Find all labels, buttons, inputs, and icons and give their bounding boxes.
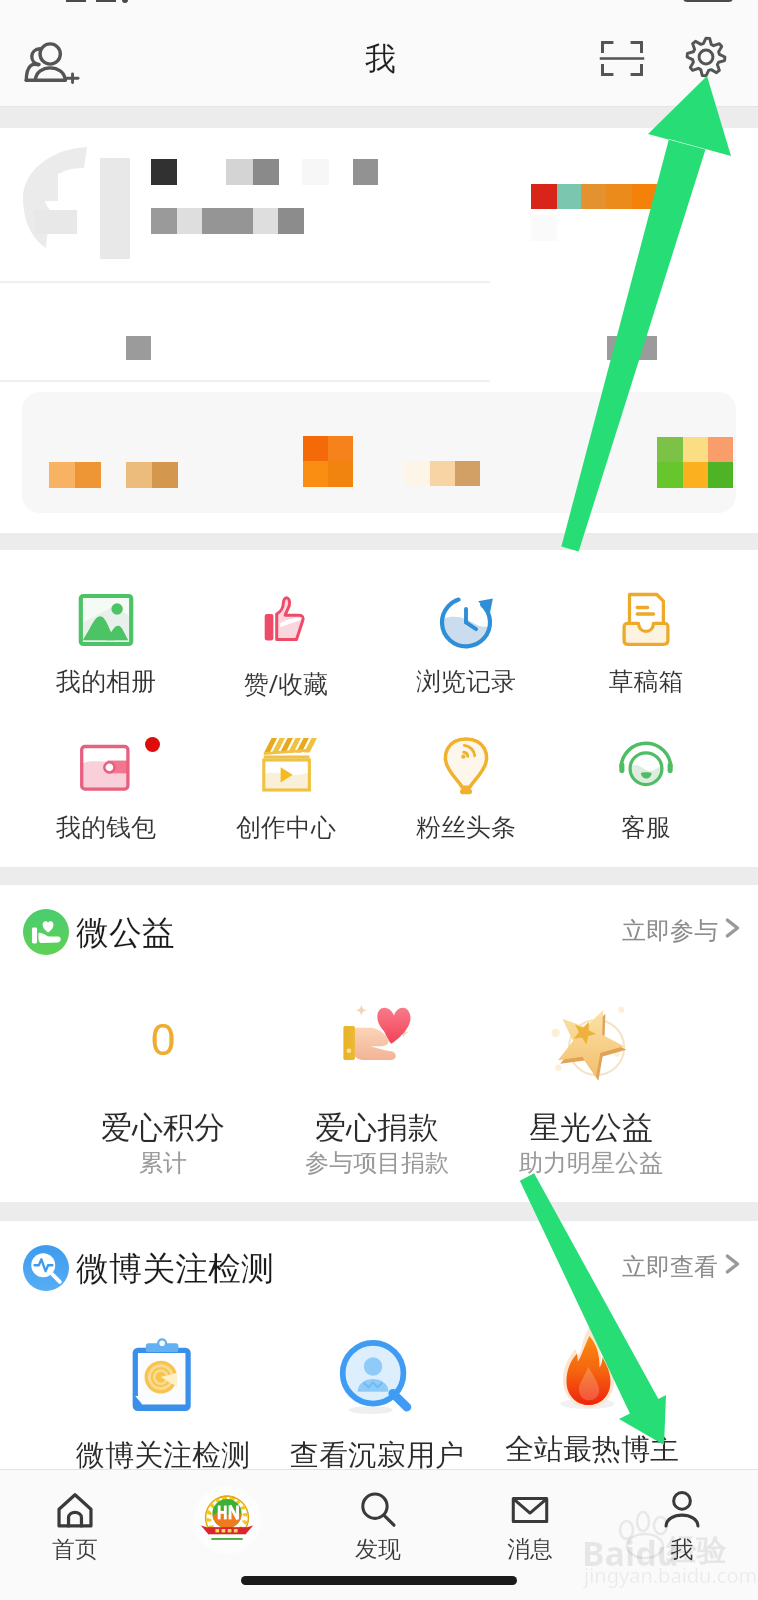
staticText: 我的钱包 xyxy=(21,812,191,843)
staticText: 消息 xyxy=(460,1535,600,1564)
staticText: Baidu xyxy=(582,1530,679,1576)
staticText: 微博关注检测 xyxy=(76,1248,274,1290)
button[interactable]: 消息 xyxy=(460,1478,600,1568)
button[interactable]: 草稿箱 xyxy=(561,578,731,700)
staticText: 累计 xyxy=(63,1148,263,1178)
button[interactable]: 微公益 xyxy=(0,885,758,967)
staticText: 0 xyxy=(63,1008,263,1068)
button[interactable]: 查看沉寂用户 xyxy=(277,1334,477,1472)
button[interactable]: Brand logo xyxy=(193,1486,261,1554)
button[interactable]: Settings xyxy=(673,24,739,90)
staticText: 浏览记录 xyxy=(381,666,551,697)
staticText: 我的相册 xyxy=(21,666,191,697)
staticText: 创作中心 xyxy=(201,812,371,843)
staticText: 立即参与 xyxy=(622,916,718,946)
button[interactable]: 我 xyxy=(612,1478,752,1568)
button[interactable]: 首页 xyxy=(5,1478,145,1568)
staticText: 首页 xyxy=(5,1535,145,1564)
button[interactable]: 爱心积分 xyxy=(63,996,263,1186)
button[interactable]: 赞/收藏 xyxy=(201,578,371,700)
button[interactable]: 创作中心 xyxy=(201,724,371,846)
staticText: 草稿箱 xyxy=(561,666,731,697)
button[interactable]: 星光公益 xyxy=(491,996,691,1186)
staticText: 立即查看 xyxy=(622,1252,718,1282)
button[interactable]: 发现 xyxy=(308,1478,448,1568)
staticText: 参与项目捐款 xyxy=(277,1148,477,1178)
staticText: 经验 xyxy=(666,1532,726,1570)
staticText: 爱心积分 xyxy=(63,1108,263,1147)
staticText: 星光公益 xyxy=(491,1108,691,1147)
button[interactable]: Scan QR code xyxy=(588,28,656,88)
staticText: 发现 xyxy=(308,1535,448,1564)
staticText: 爱心捐款 xyxy=(277,1108,477,1147)
button[interactable]: 我的钱包 xyxy=(21,724,191,846)
staticText: 微博关注检测 xyxy=(63,1437,263,1474)
button[interactable]: Add friend xyxy=(8,28,96,98)
button[interactable]: 微博关注检测 xyxy=(0,1221,758,1303)
staticText: 查看沉寂用户 xyxy=(277,1437,477,1474)
staticText: 我 xyxy=(365,39,396,78)
staticText: jingyan.baidu.com xyxy=(584,1562,758,1589)
staticText: 微公益 xyxy=(76,912,175,954)
button[interactable]: 粉丝头条 xyxy=(381,724,551,846)
button[interactable]: 爱心捐款 xyxy=(277,996,477,1186)
staticText: 赞/收藏 xyxy=(201,666,371,700)
staticText: 全站最热博主 xyxy=(492,1431,692,1468)
staticText: 助力明星公益 xyxy=(491,1148,691,1178)
button[interactable]: 我的相册 xyxy=(21,578,191,700)
button[interactable]: 全站最热博主 xyxy=(492,1328,692,1466)
button[interactable]: 微博关注检测 xyxy=(63,1334,263,1472)
staticText: 客服 xyxy=(561,812,731,843)
button[interactable]: 客服 xyxy=(561,724,731,846)
staticText: 我 xyxy=(612,1535,752,1564)
staticText: 粉丝头条 xyxy=(381,812,551,843)
button[interactable]: 浏览记录 xyxy=(381,578,551,700)
